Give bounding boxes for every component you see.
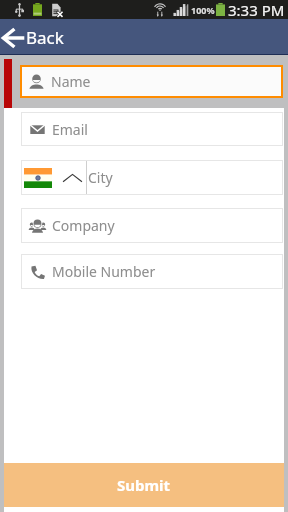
button[interactable]: Email [21, 112, 283, 146]
button[interactable]: Name [20, 65, 283, 98]
button[interactable]: Company [21, 208, 283, 243]
staticText: 100% [191, 4, 215, 16]
other: Back [2, 28, 25, 48]
staticText: Back [26, 26, 64, 49]
staticText: Mobile Number [52, 262, 156, 281]
button[interactable]: Submit [4, 463, 284, 507]
staticText: 3:33 PM [228, 0, 285, 19]
button[interactable]: Back [0, 22, 72, 53]
staticText: Submit [117, 475, 171, 495]
staticText: Company [52, 216, 115, 235]
staticText: Name [51, 72, 91, 91]
staticText: City [88, 168, 113, 187]
staticText: Email [52, 120, 88, 139]
button[interactable]: Mobile Number [21, 254, 283, 289]
button[interactable]: City [21, 160, 283, 195]
